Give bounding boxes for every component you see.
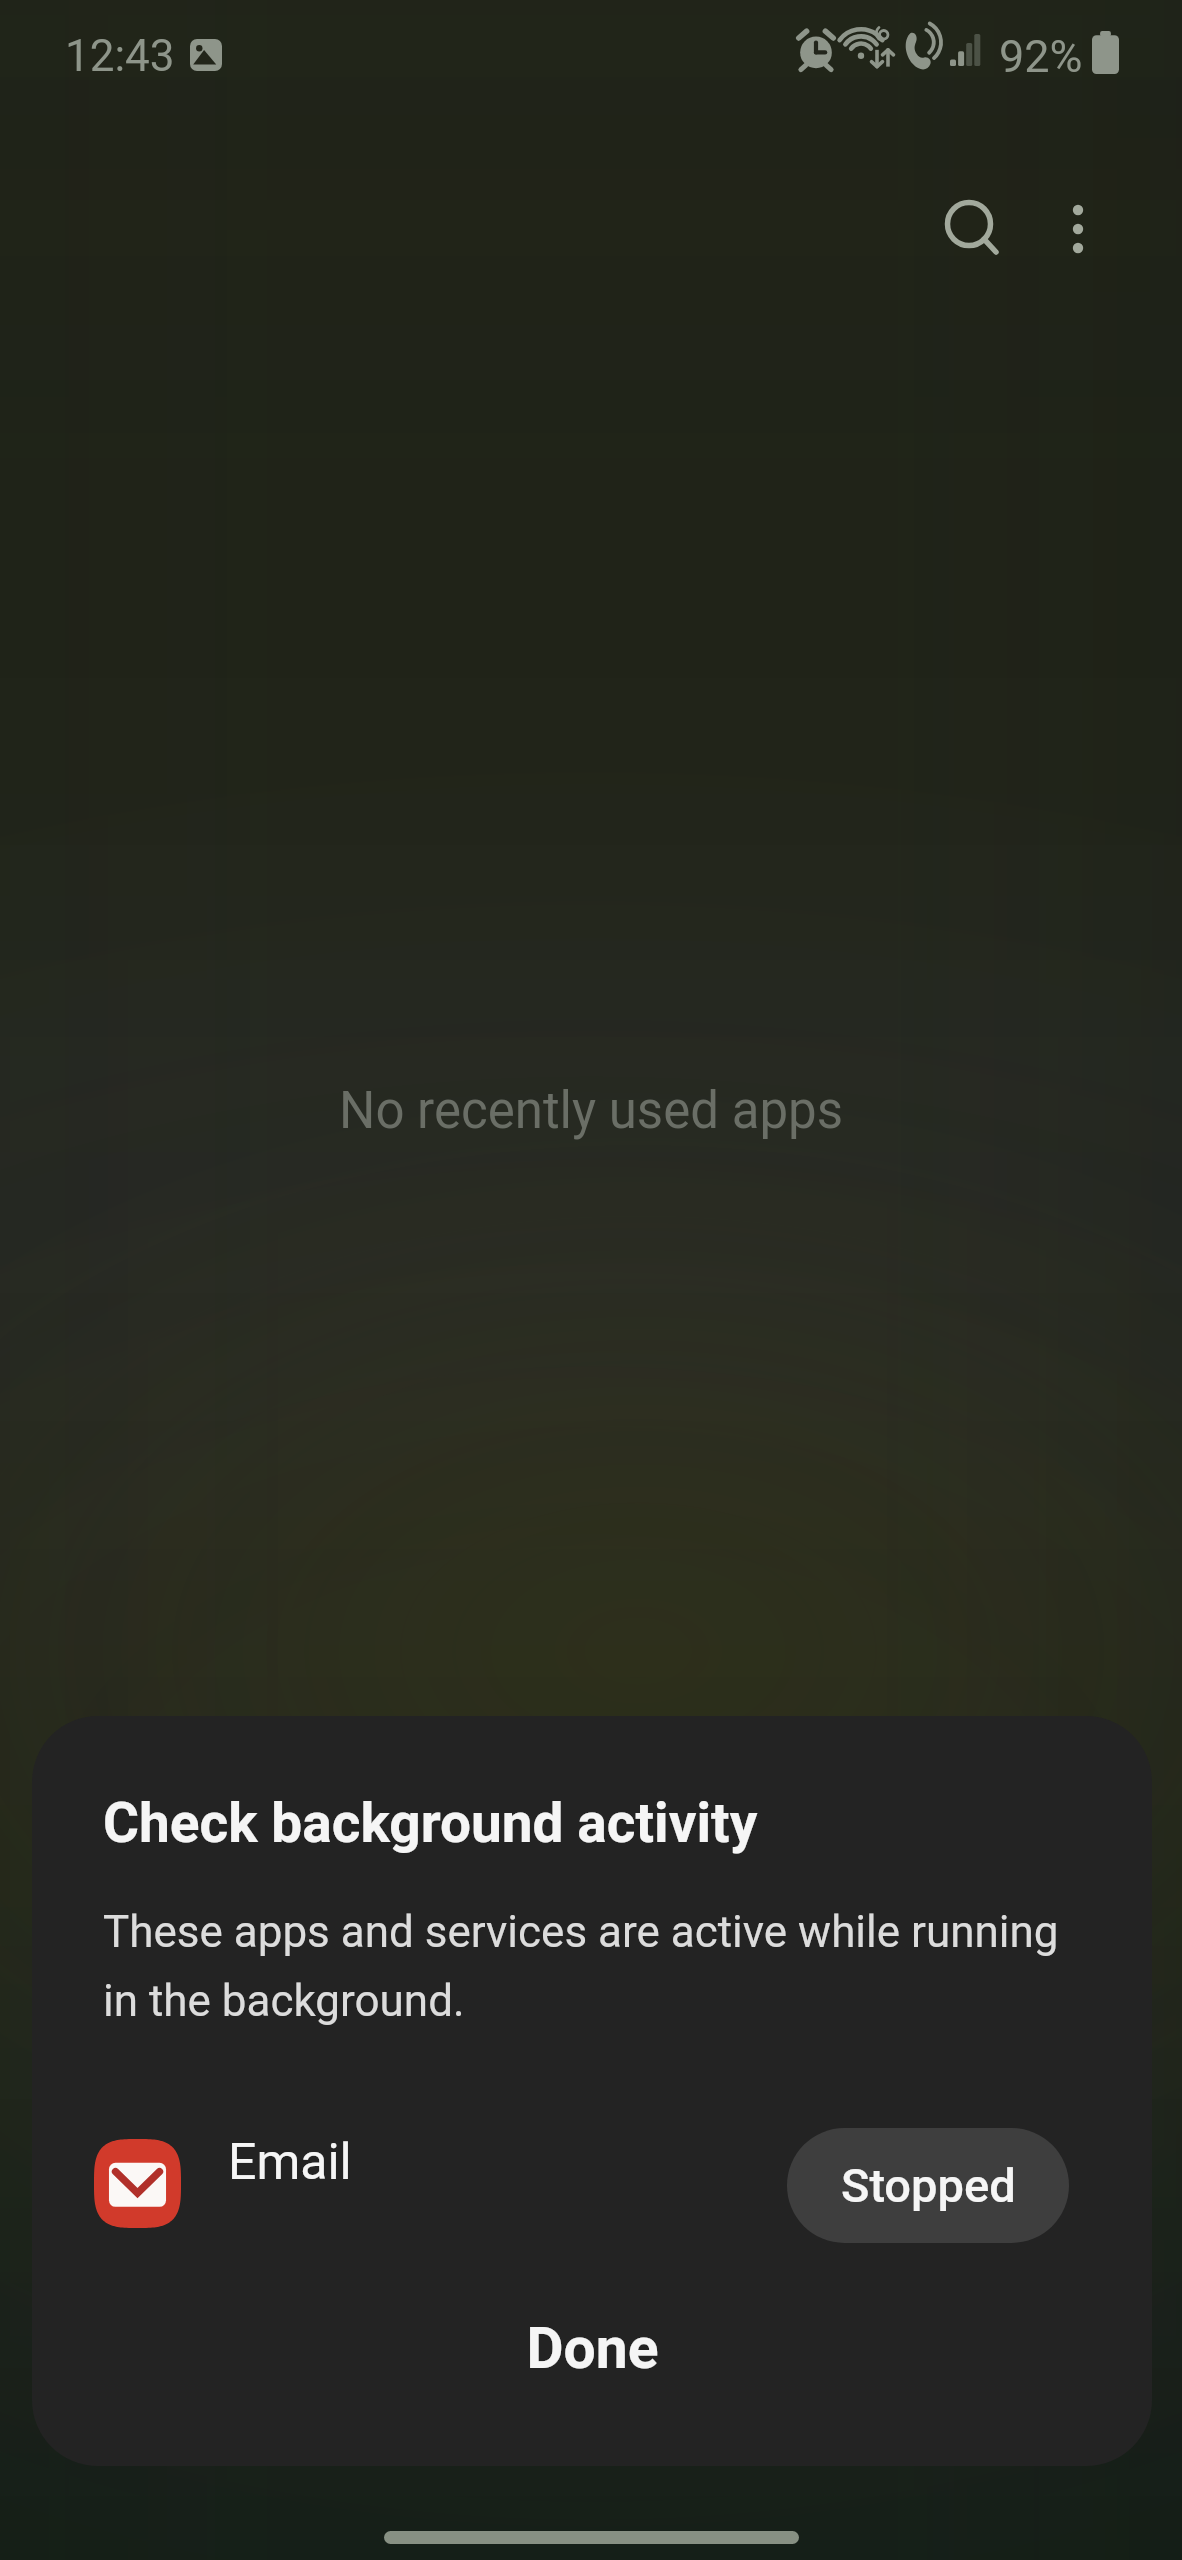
staticText: These apps and services are active while… (103, 1906, 1103, 2027)
button[interactable]: Done (32, 2273, 1152, 2423)
staticText: Stopped (841, 2158, 1016, 2213)
button[interactable]: Stopped (787, 2128, 1069, 2243)
button[interactable]: Email app icon (32, 2116, 1152, 2251)
button[interactable]: Search (915, 172, 1031, 288)
staticText: 92% (999, 30, 1083, 83)
button[interactable]: More options (1020, 172, 1136, 288)
staticText: No recently used apps (339, 1081, 843, 1141)
staticText: 12:43 (65, 30, 175, 82)
staticText: Email (228, 2133, 352, 2192)
other: Email app icon (94, 2139, 181, 2228)
staticText: Check background activity (103, 1791, 758, 1855)
staticText: Done (526, 2315, 659, 2382)
